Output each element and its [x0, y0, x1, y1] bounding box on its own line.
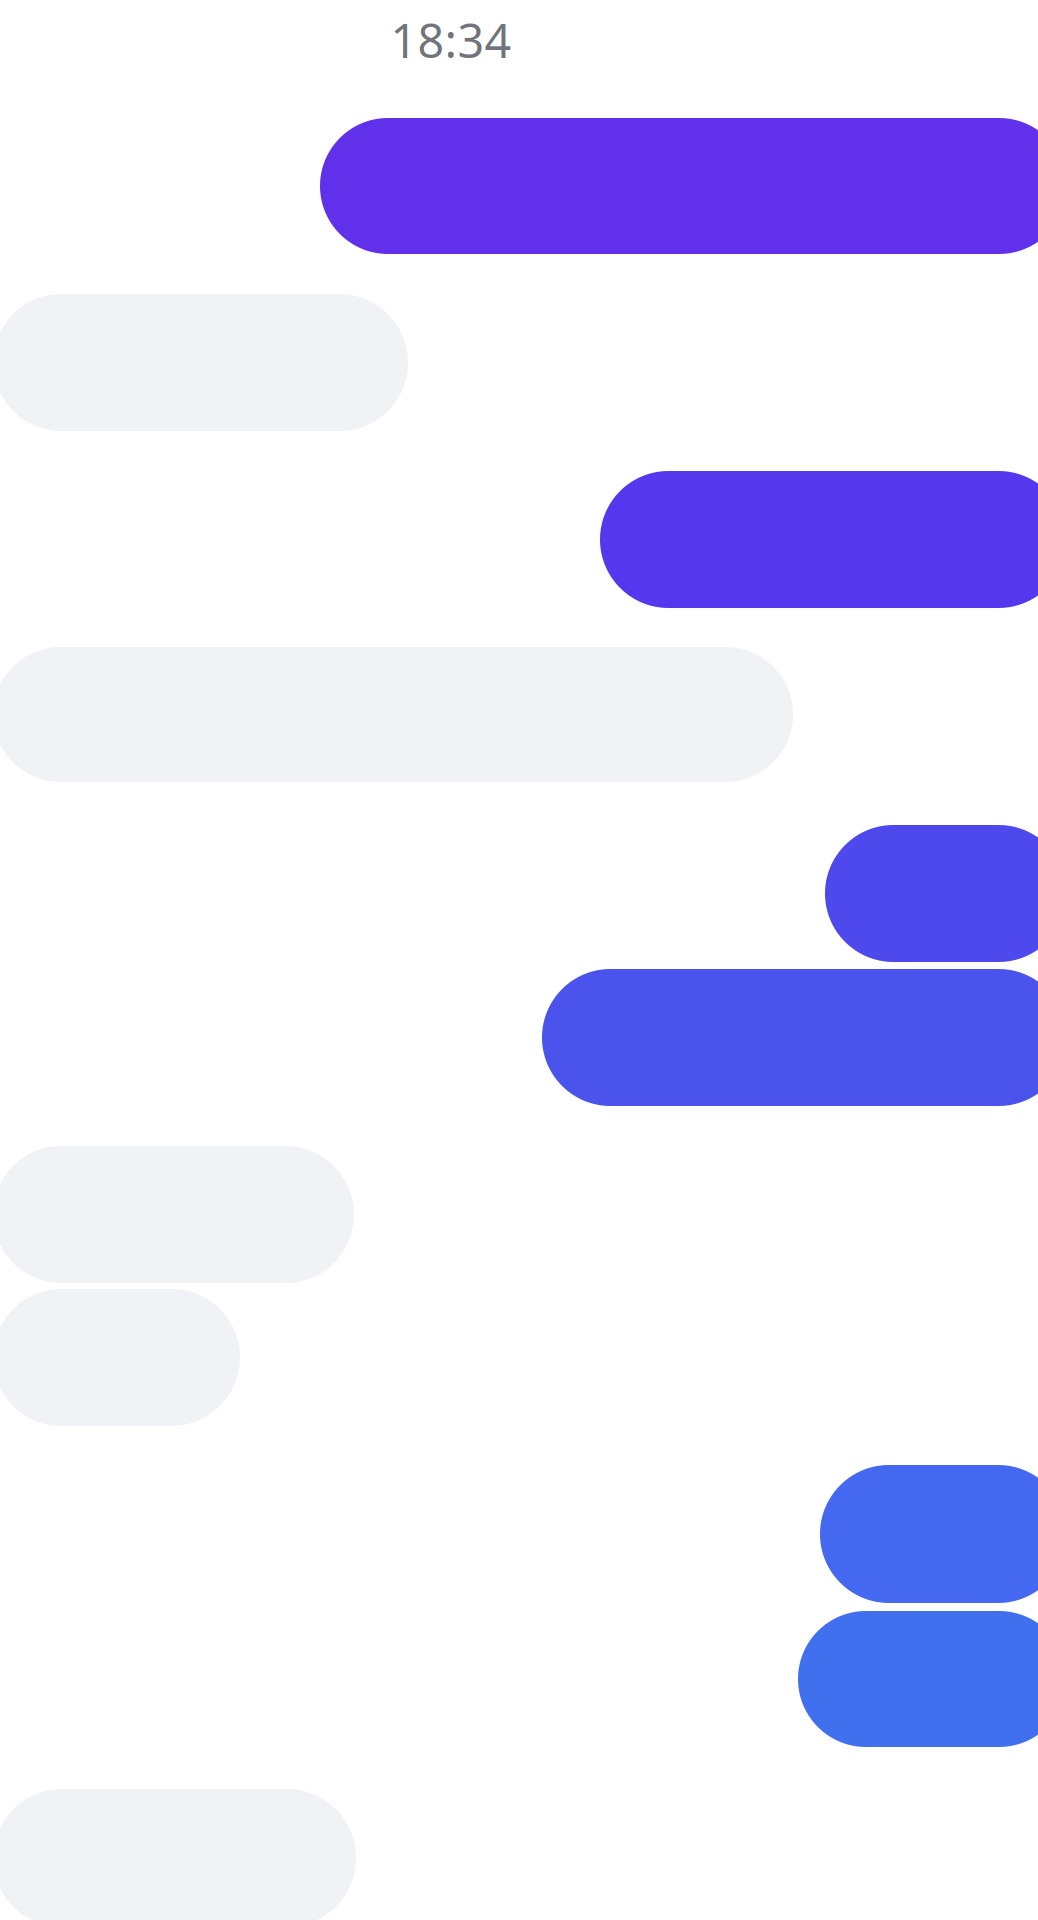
- button[interactable]: Sent message: [820, 1465, 1038, 1603]
- button[interactable]: Sent message: [600, 471, 1038, 608]
- staticText: 18:34: [390, 9, 511, 71]
- button[interactable]: Sent message: [320, 118, 1038, 254]
- button[interactable]: Received message: [0, 1789, 356, 1920]
- button[interactable]: Sent message: [542, 969, 1038, 1106]
- button[interactable]: Received message: [0, 294, 408, 431]
- button[interactable]: Sent message: [825, 825, 1038, 962]
- button[interactable]: Received message: [0, 1289, 240, 1426]
- button[interactable]: Received message: [0, 1146, 354, 1283]
- button[interactable]: Sent message: [798, 1611, 1038, 1747]
